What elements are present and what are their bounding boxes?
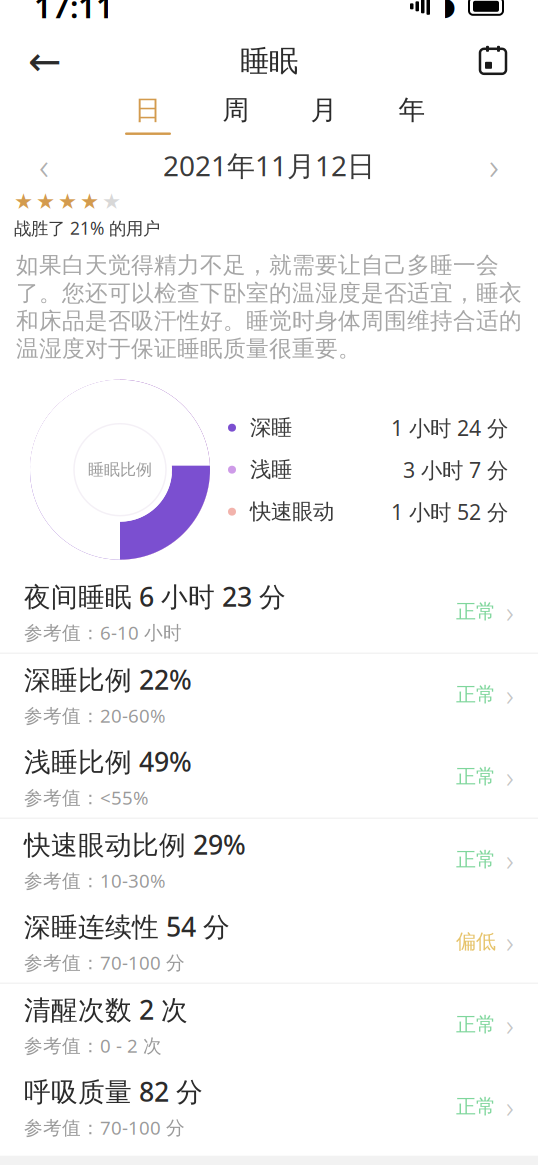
staticText: › bbox=[506, 840, 514, 879]
staticText: 清醒次数 2 次 bbox=[24, 992, 188, 1027]
button[interactable]: 月 bbox=[280, 91, 368, 137]
staticText: 战胜了 21% 的用户 bbox=[14, 216, 160, 239]
staticText: 参考值：0 - 2 次 bbox=[24, 1033, 162, 1058]
staticText: › bbox=[506, 757, 514, 796]
staticText: 17:11 bbox=[34, 0, 114, 27]
staticText: 3 小时 7 分 bbox=[403, 455, 508, 484]
button[interactable]: 日 bbox=[104, 91, 192, 137]
button[interactable]: 快速眼动比例 29% bbox=[0, 819, 538, 901]
button[interactable]: 深睡连续性 54 分 bbox=[0, 901, 538, 983]
staticText: ‹ bbox=[39, 140, 49, 190]
staticText: ← bbox=[28, 39, 62, 84]
staticText: 夜间睡眠 6 小时 23 分 bbox=[24, 579, 286, 614]
staticText: 参考值：70-100 分 bbox=[24, 950, 185, 975]
staticText: › bbox=[506, 675, 514, 714]
staticText: › bbox=[489, 140, 499, 190]
staticText: 1 小时 24 分 bbox=[391, 413, 508, 442]
staticText: 参考值：10-30% bbox=[24, 868, 166, 893]
staticText: 参考值：20-60% bbox=[24, 703, 166, 728]
button[interactable]: 年 bbox=[368, 91, 456, 137]
button[interactable]: 夜间睡眠 6 小时 23 分 bbox=[0, 571, 538, 653]
staticText: ★ bbox=[14, 189, 33, 213]
staticText: › bbox=[506, 1087, 514, 1126]
staticText: 深睡连续性 54 分 bbox=[24, 909, 230, 944]
staticText: ★ bbox=[36, 189, 55, 213]
staticText: 睡眠 bbox=[240, 43, 298, 79]
staticText: 周 bbox=[222, 94, 249, 126]
staticText: 日 bbox=[134, 94, 161, 126]
button[interactable]: 周 bbox=[192, 91, 280, 137]
staticText: 偏低 bbox=[456, 929, 496, 954]
staticText: 如果白天觉得精力不足，就需要让自己多睡一会了。您还可以检查下卧室的温湿度是否适宜… bbox=[16, 251, 522, 363]
staticText: 参考值：70-100 分 bbox=[24, 1115, 185, 1140]
staticText: 正常 bbox=[456, 847, 496, 872]
staticText: 正常 bbox=[456, 764, 496, 789]
staticText: 正常 bbox=[456, 599, 496, 624]
staticText: 参考值：<55% bbox=[24, 785, 149, 810]
staticText: ★ bbox=[80, 189, 99, 213]
button[interactable]: 选择日期 bbox=[466, 34, 520, 88]
staticText: ★ bbox=[58, 189, 77, 213]
staticText: 深睡比例 22% bbox=[24, 662, 192, 697]
staticText: › bbox=[506, 922, 514, 961]
staticText: › bbox=[506, 592, 514, 631]
staticText: 正常 bbox=[456, 1012, 496, 1037]
staticText: 月 bbox=[310, 94, 337, 126]
staticText: › bbox=[506, 1005, 514, 1044]
staticText: 浅睡 bbox=[250, 457, 292, 483]
staticText: 年 bbox=[398, 94, 425, 126]
button[interactable]: 前一天 bbox=[14, 140, 74, 190]
button[interactable]: 返回 bbox=[18, 34, 72, 88]
staticText: 深睡 bbox=[250, 415, 292, 441]
staticText: ★ bbox=[102, 189, 121, 213]
button[interactable]: 清醒次数 2 次 bbox=[0, 984, 538, 1066]
staticText: 快速眼动 bbox=[250, 499, 334, 525]
staticText: 参考值：6-10 小时 bbox=[24, 620, 182, 645]
staticText: 快速眼动比例 29% bbox=[24, 827, 246, 862]
button[interactable]: 浅睡比例 49% bbox=[0, 736, 538, 818]
staticText: 呼吸质量 82 分 bbox=[24, 1074, 203, 1109]
staticText: ◗ bbox=[442, 0, 455, 21]
staticText: 浅睡比例 49% bbox=[24, 744, 192, 779]
button[interactable]: 呼吸质量 82 分 bbox=[0, 1066, 538, 1148]
staticText: 1 小时 52 分 bbox=[391, 497, 508, 526]
staticText: 2021年11月12日 bbox=[163, 147, 375, 184]
staticText: 正常 bbox=[456, 682, 496, 707]
staticText: 正常 bbox=[456, 1094, 496, 1119]
button[interactable]: 深睡比例 22% bbox=[0, 654, 538, 736]
button[interactable]: 后一天 bbox=[464, 140, 524, 190]
staticText: 睡眠比例 bbox=[88, 460, 152, 480]
